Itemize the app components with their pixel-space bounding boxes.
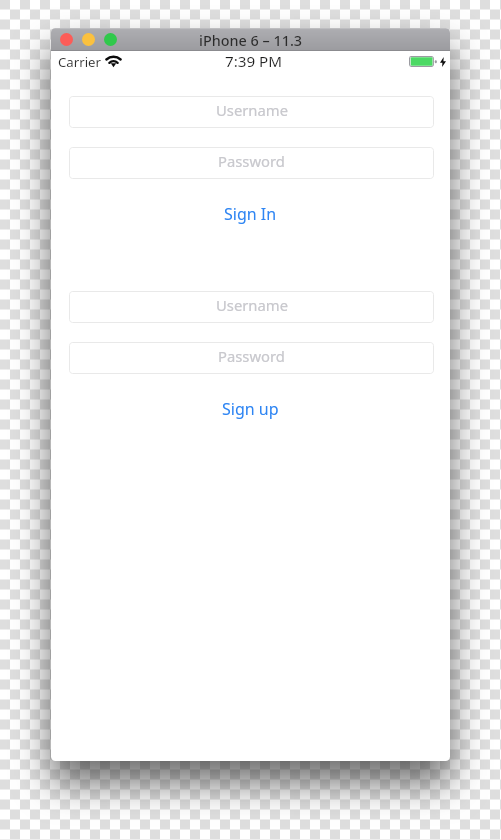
button[interactable]: Password [69,342,434,374]
staticText: iPhone 6 – 11.3 [199,31,303,51]
staticText: Password [218,346,285,366]
button[interactable]: Username [69,291,434,323]
button[interactable]: Sign In [51,203,450,225]
staticText: Carrier [58,53,101,71]
button[interactable]: Close [60,33,73,46]
button[interactable]: Username [69,96,434,128]
staticText: Password [218,151,285,171]
staticText: Sign In [224,203,277,225]
staticText: Sign up [222,398,279,420]
staticText: Username [216,295,288,315]
staticText: 7:39 PM [225,51,283,71]
button[interactable]: Minimise [82,33,95,46]
button[interactable]: Sign up [51,398,450,420]
button[interactable]: Zoom [104,33,117,46]
staticText: Username [216,100,288,120]
button[interactable]: Password [69,147,434,179]
